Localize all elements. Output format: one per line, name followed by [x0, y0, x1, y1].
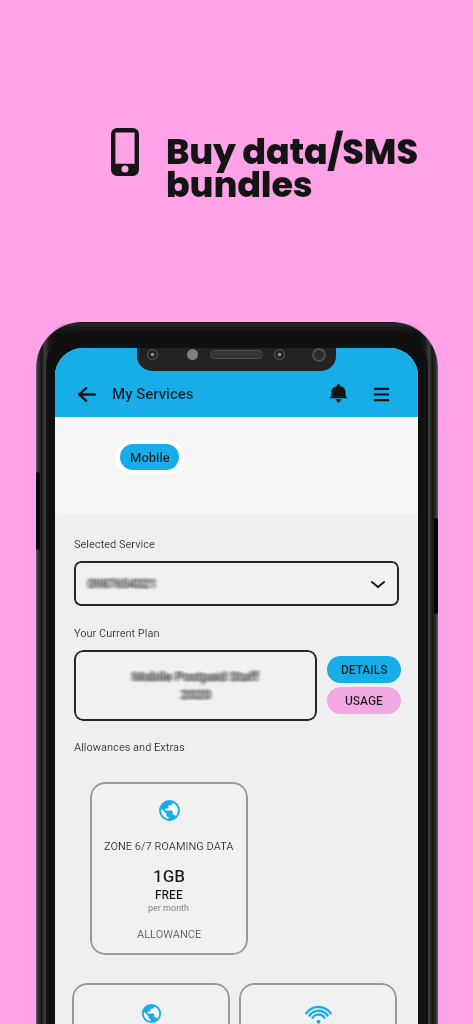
staticText: Allowances and Extras: [74, 741, 185, 754]
staticText: 0987654321: [85, 576, 154, 590]
staticText: 0987654321: [89, 576, 158, 590]
staticText: Mobile Postpaid Staff: [133, 671, 260, 686]
staticText: 2020: [179, 687, 209, 702]
staticText: ZONE 6/7 ROAMING DATA: [104, 840, 234, 853]
staticText: 0987654321: [87, 577, 156, 591]
staticText: 0987654321: [85, 578, 154, 592]
staticText: Mobile Postpaid Staff: [136, 670, 263, 685]
staticText: Mobile Postpaid Staff: [136, 670, 263, 685]
staticText: Mobile Postpaid Staff: [131, 669, 258, 684]
staticText: Mobile Postpaid Staff: [135, 668, 262, 683]
staticText: 2020: [179, 688, 209, 703]
staticText: 0987654321: [88, 578, 157, 592]
staticText: 0987654321: [90, 576, 159, 590]
button[interactable]: Wifi calls: [239, 983, 397, 1024]
staticText: 0987654321: [86, 577, 155, 591]
button[interactable]: Mobile Postpaid Staff: [74, 650, 317, 721]
staticText: 0987654321: [84, 577, 153, 591]
staticText: 0987654321: [88, 576, 157, 590]
staticText: 2020: [178, 686, 208, 701]
staticText: 0987654321: [84, 576, 153, 590]
staticText: 2020: [182, 687, 212, 702]
staticText: Mobile Postpaid Staff: [130, 669, 257, 684]
staticText: Mobile Postpaid Staff: [132, 671, 259, 686]
staticText: Mobile Postpaid Staff: [134, 667, 261, 682]
staticText: Mobile Postpaid Staff: [134, 669, 261, 684]
staticText: 2020: [182, 686, 212, 701]
staticText: 2020: [183, 685, 213, 700]
staticText: 2020: [182, 688, 212, 703]
staticText: Mobile Postpaid Staff: [128, 669, 255, 684]
button[interactable]: Roaming data: [72, 983, 230, 1024]
staticText: Mobile Postpaid Staff: [132, 670, 259, 685]
staticText: 0987654321: [86, 579, 155, 593]
staticText: Selected Service: [74, 538, 155, 551]
staticText: 2020: [177, 686, 207, 701]
button[interactable]: Back: [73, 380, 101, 408]
staticText: Mobile Postpaid Staff: [133, 670, 260, 685]
staticText: 0987654321: [86, 578, 155, 592]
staticText: 2020: [180, 687, 210, 702]
staticText: Mobile Postpaid Staff: [130, 671, 257, 686]
staticText: 0987654321: [88, 577, 157, 591]
button[interactable]: Notifications: [324, 380, 352, 408]
staticText: 0987654321: [90, 578, 159, 592]
staticText: 0987654321: [90, 579, 159, 593]
staticText: 0987654321: [86, 575, 155, 589]
button[interactable]: 0987654321: [74, 561, 399, 606]
button[interactable]: Mobile: [120, 444, 179, 470]
staticText: Mobile Postpaid Staff: [131, 670, 258, 685]
staticText: Mobile Postpaid Staff: [130, 668, 257, 683]
staticText: 0987654321: [92, 576, 161, 590]
staticText: 2020: [177, 688, 207, 703]
staticText: Mobile Postpaid Staff: [129, 669, 256, 684]
staticText: Mobile Postpaid Staff: [131, 667, 258, 682]
staticText: Mobile Postpaid Staff: [136, 669, 263, 684]
button[interactable]: DETAILS: [327, 656, 401, 683]
staticText: 2020: [178, 688, 208, 703]
staticText: 0987654321: [89, 578, 158, 592]
staticText: 0987654321: [87, 578, 156, 592]
staticText: 2020: [183, 686, 213, 701]
staticText: Mobile Postpaid Staff: [131, 668, 258, 683]
staticText: Mobile Postpaid Staff: [132, 669, 259, 684]
staticText: 2020: [183, 689, 213, 704]
staticText: 2020: [183, 685, 213, 700]
staticText: 0987654321: [92, 578, 161, 592]
staticText: Mobile Postpaid Staff: [133, 669, 260, 684]
staticText: Mobile Postpaid Staff: [133, 668, 260, 683]
button[interactable]: ZONE 6/7 ROAMING DATA: [90, 782, 248, 955]
staticText: Mobile Postpaid Staff: [130, 671, 257, 686]
staticText: 2020: [180, 685, 210, 700]
staticText: FREE: [155, 888, 183, 902]
staticText: 0987654321: [86, 576, 155, 590]
staticText: 0987654321: [90, 577, 159, 591]
staticText: per month: [148, 903, 190, 914]
staticText: Mobile Postpaid Staff: [128, 668, 255, 683]
staticText: Mobile Postpaid Staff: [128, 669, 255, 684]
staticText: 0987654321: [84, 578, 153, 592]
staticText: Mobile Postpaid Staff: [133, 670, 260, 685]
staticText: Mobile Postpaid Staff: [133, 671, 260, 686]
staticText: 0987654321: [89, 576, 158, 590]
staticText: Mobile Postpaid Staff: [133, 667, 260, 682]
staticText: 2020: [183, 687, 213, 702]
staticText: Mobile Postpaid Staff: [134, 670, 261, 685]
staticText: Mobile Postpaid Staff: [134, 669, 261, 684]
staticText: 0987654321: [92, 577, 161, 591]
staticText: 0987654321: [90, 577, 159, 591]
staticText: Mobile Postpaid Staff: [130, 667, 257, 682]
staticText: 2020: [185, 686, 215, 701]
staticText: Mobile Postpaid Staff: [128, 670, 255, 685]
staticText: 0987654321: [84, 577, 153, 591]
staticText: Mobile Postpaid Staff: [134, 671, 261, 686]
button[interactable]: USAGE: [327, 687, 401, 714]
staticText: 2020: [179, 689, 209, 704]
staticText: 2020: [184, 687, 214, 702]
button[interactable]: Menu: [367, 380, 395, 408]
staticText: 0987654321: [90, 578, 159, 592]
staticText: 0987654321: [86, 575, 155, 589]
staticText: Mobile Postpaid Staff: [130, 669, 257, 684]
staticText: 2020: [178, 687, 208, 702]
staticText: 2020: [177, 686, 207, 701]
